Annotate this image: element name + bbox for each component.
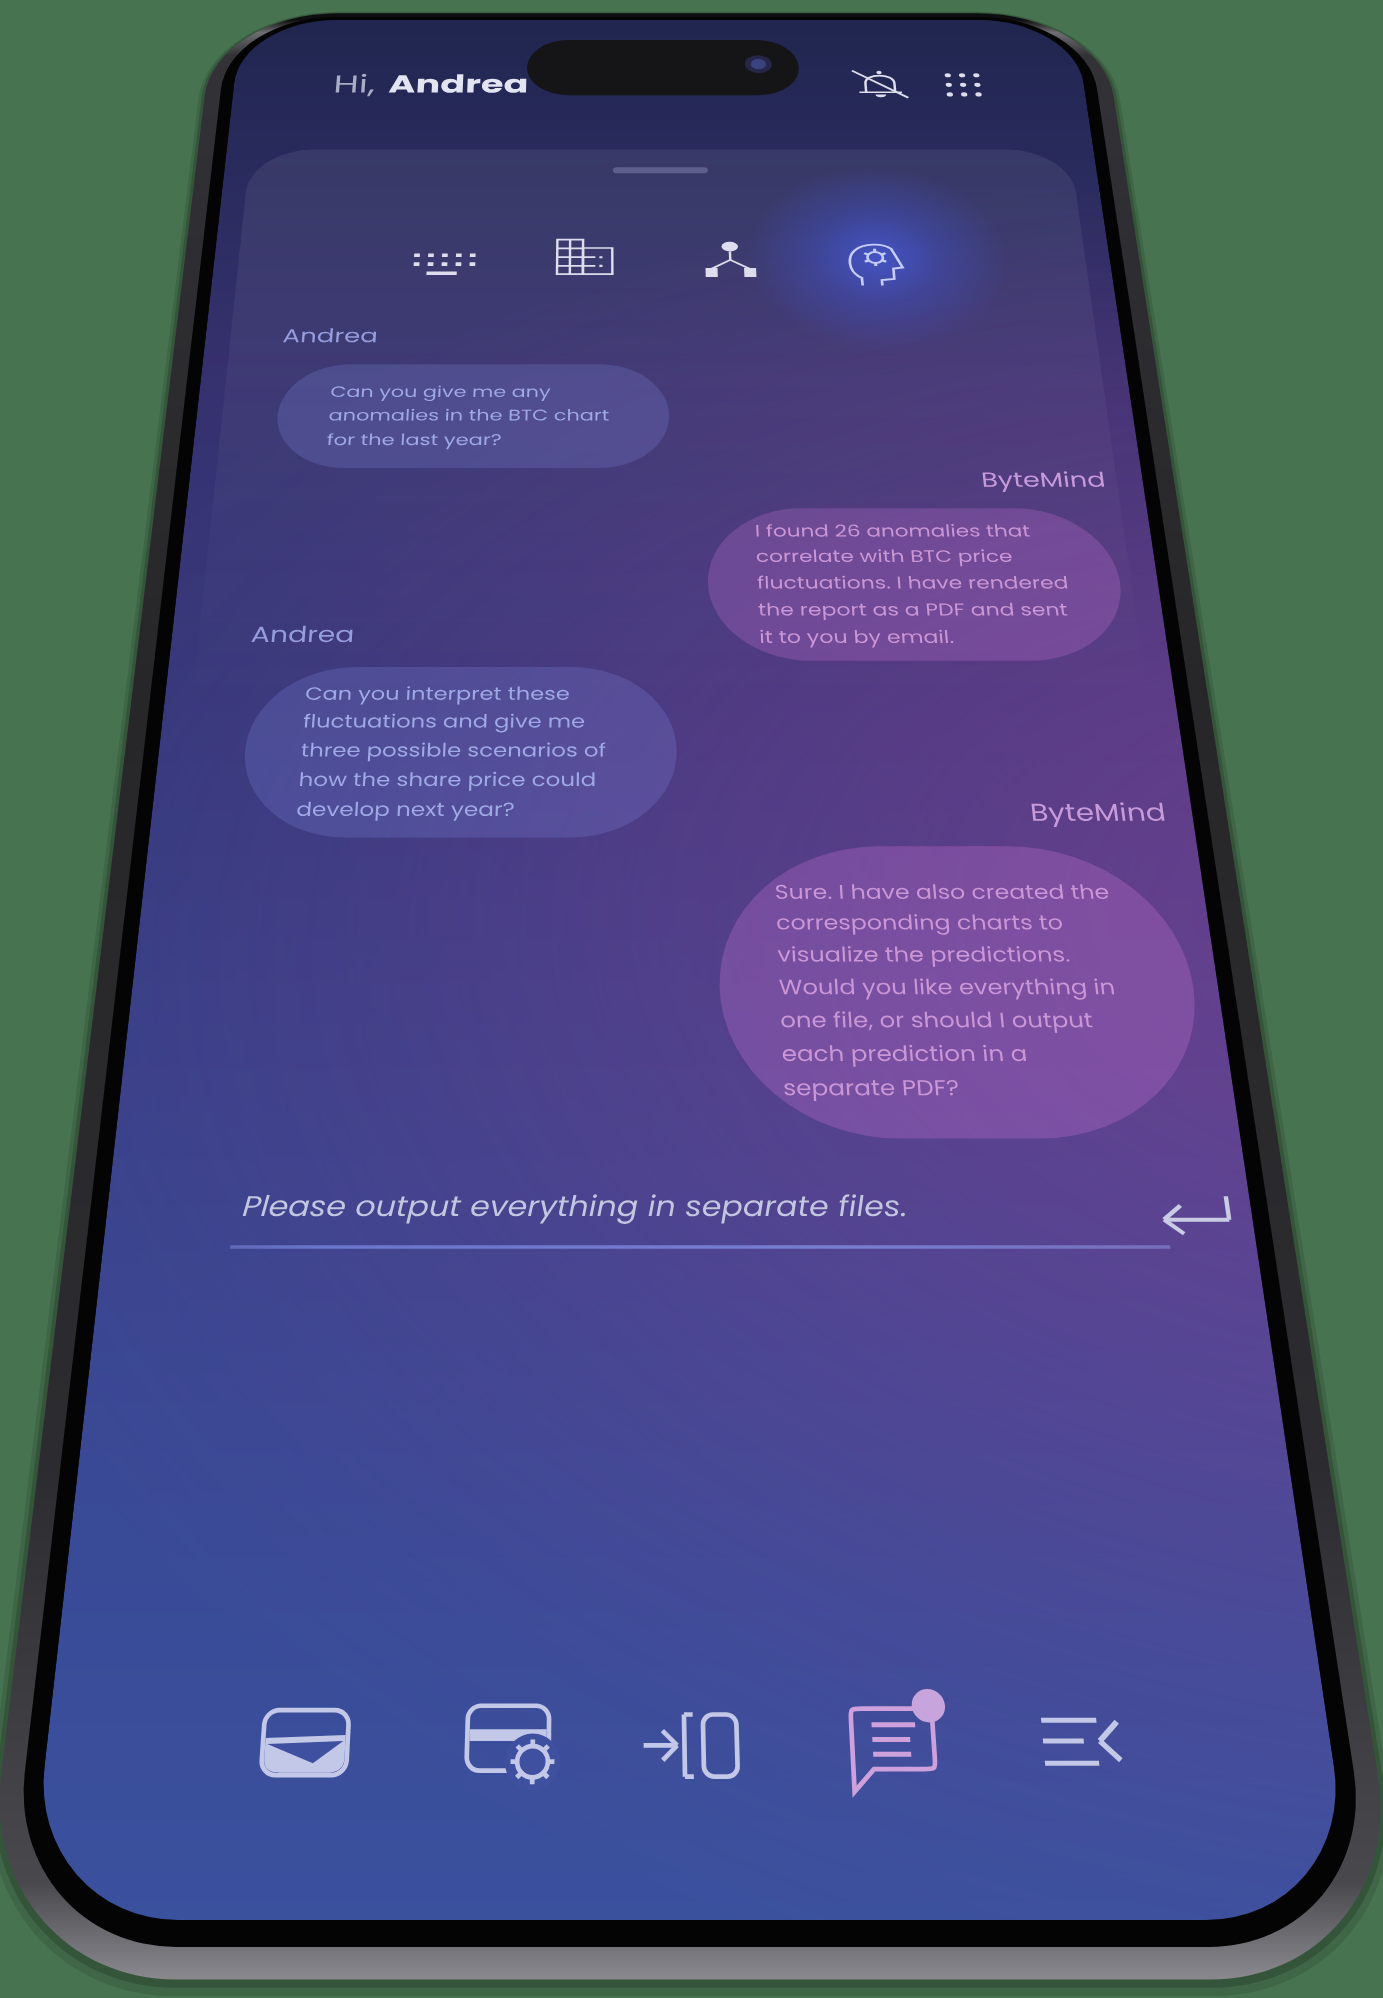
button[interactable]: ByteMind assistant chat on phone	[0, 0, 1383, 1998]
